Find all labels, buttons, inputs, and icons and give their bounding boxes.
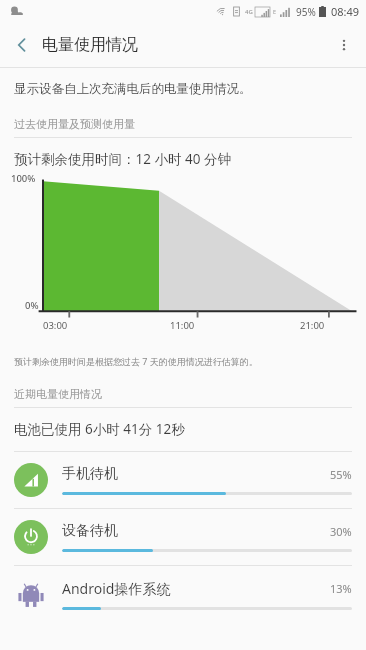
staticText: 4G [245,8,253,16]
staticText: 100% [11,172,36,185]
staticText: 21:00 [300,319,325,332]
staticText: 电量使用情况 [42,35,138,55]
staticText: 30% [330,524,352,539]
staticText: 预计剩余使用时间：12 小时 40 分钟 [14,150,231,168]
staticText: 近期电量使用情况 [14,387,102,401]
staticText: 55% [330,467,352,482]
button[interactable]: 设备待机 [0,509,366,565]
button[interactable]: More options [322,23,366,67]
staticText: E [273,8,277,15]
staticText: 过去使用量及预测使用量 [14,117,135,131]
staticText: 13% [330,581,352,596]
staticText: 设备待机 [62,522,330,540]
button[interactable]: Android操作系统 [0,566,366,622]
staticText: 电池已使用 6小时 41分 12秒 [14,420,185,438]
staticText: 0% [25,299,39,312]
staticText: 11:00 [170,319,195,332]
staticText: 08:49 [331,4,360,19]
staticText: Android操作系统 [62,579,330,598]
staticText: 手机待机 [62,465,330,483]
staticText: 95% [296,5,316,19]
staticText: 预计剩余使用时间是根据您过去 7 天的使用情况进行估算的。 [14,355,258,367]
staticText: 显示设备自上次充满电后的电量使用情况。 [14,81,252,97]
staticText: 03:00 [43,319,68,332]
button[interactable]: 手机待机 [0,452,366,508]
button[interactable]: Back [0,23,44,67]
